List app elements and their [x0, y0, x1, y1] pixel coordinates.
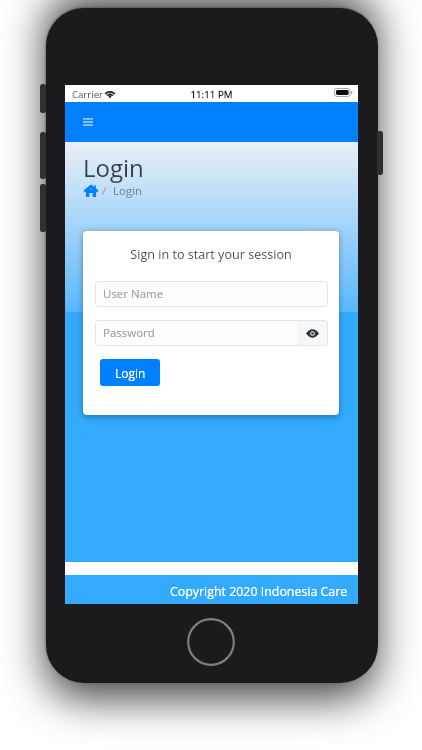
button[interactable]: User Name: [95, 281, 328, 307]
button[interactable]: Menu: [77, 110, 99, 134]
staticText: Password: [103, 325, 155, 341]
button[interactable]: Show password: [297, 320, 328, 346]
staticText: Carrier: [72, 88, 103, 101]
staticText: Login: [83, 151, 144, 184]
button[interactable]: Login: [100, 359, 160, 386]
staticText: Login: [115, 365, 146, 381]
button[interactable]: Password: [95, 320, 297, 346]
staticText: Sign in to start your session: [83, 246, 339, 263]
staticText: Copyright 2020 Indonesia Care: [170, 583, 348, 600]
staticText: User Name: [103, 286, 164, 302]
staticText: Login: [113, 183, 143, 199]
staticText: /: [102, 183, 107, 199]
staticText: 11:11 PM: [65, 88, 358, 101]
